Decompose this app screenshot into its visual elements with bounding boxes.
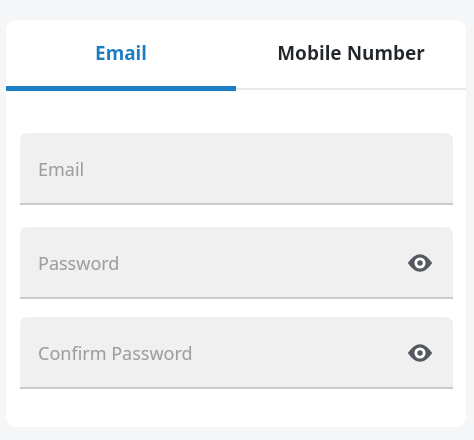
button[interactable]: Email — [20, 133, 453, 205]
button[interactable]: Email — [6, 20, 236, 86]
button[interactable]: Confirm Password — [20, 317, 453, 389]
button[interactable]: Show password — [405, 338, 435, 368]
staticText: Confirm Password — [38, 341, 193, 366]
staticText: Email — [95, 40, 147, 66]
button[interactable]: Show password — [405, 248, 435, 278]
button[interactable]: Mobile Number — [236, 20, 466, 86]
staticText: Email — [38, 157, 85, 182]
button[interactable]: Password — [20, 227, 453, 299]
staticText: Mobile Number — [277, 40, 425, 66]
staticText: Password — [38, 251, 120, 276]
